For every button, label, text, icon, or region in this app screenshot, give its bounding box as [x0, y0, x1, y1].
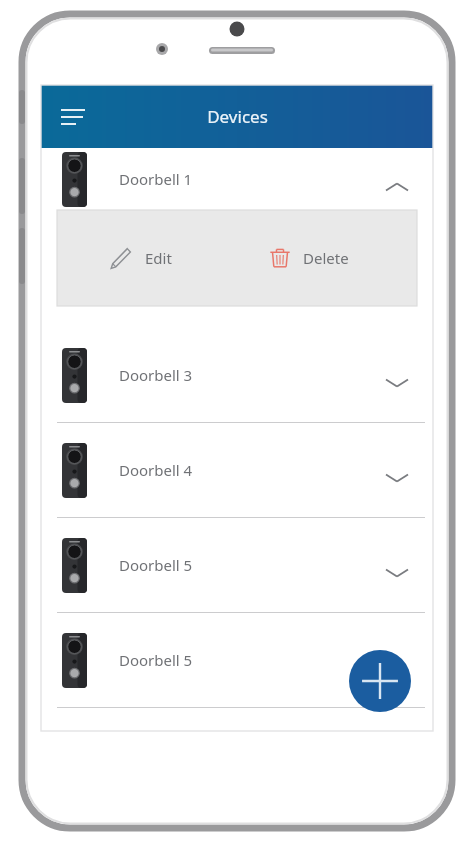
button[interactable]: Doorbell 5: [41, 613, 433, 707]
button[interactable]: Add device: [349, 650, 411, 712]
button[interactable]: Delete: [269, 247, 349, 269]
staticText: Doorbell 5: [119, 650, 193, 670]
staticText: Doorbell 3: [119, 365, 193, 385]
button[interactable]: Doorbell 4: [41, 423, 433, 517]
button[interactable]: Expand Doorbell 5: [375, 551, 419, 595]
staticText: Delete: [303, 248, 349, 268]
button[interactable]: Edit: [107, 245, 172, 271]
button[interactable]: Doorbell 5: [41, 518, 433, 612]
button[interactable]: Doorbell 3: [41, 328, 433, 422]
staticText: Doorbell 1: [119, 169, 193, 189]
staticText: Doorbell 4: [119, 460, 193, 480]
button[interactable]: Collapse Doorbell 1: [375, 165, 419, 209]
button[interactable]: Expand Doorbell 3: [375, 361, 419, 405]
staticText: Edit: [145, 248, 172, 268]
staticText: Devices: [207, 105, 268, 128]
button[interactable]: Doorbell 1: [41, 148, 433, 210]
button[interactable]: Expand Doorbell 4: [375, 456, 419, 500]
button[interactable]: Open navigation menu: [51, 95, 95, 139]
staticText: Doorbell 5: [119, 555, 193, 575]
